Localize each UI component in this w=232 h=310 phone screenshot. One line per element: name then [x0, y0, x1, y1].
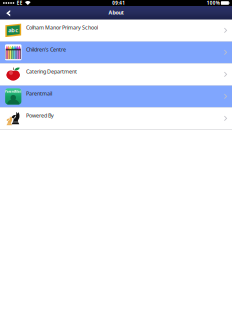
button[interactable]: ParentMail: [0, 86, 232, 108]
staticText: abc: [8, 26, 18, 34]
button[interactable]: abc: [0, 20, 232, 42]
staticText: Colham Manor Primary School: [26, 24, 98, 31]
button[interactable]: Back: [0, 6, 15, 19]
button[interactable]: Children's Centre: [0, 42, 232, 64]
staticText: Catering Department: [26, 68, 77, 75]
button[interactable]: Catering Department: [0, 64, 232, 86]
staticText: EE: [17, 0, 23, 6]
staticText: Powered By: [26, 112, 54, 119]
staticText: 09:41: [112, 0, 125, 6]
staticText: Children's Centre: [26, 46, 66, 53]
staticText: 100%: [207, 0, 220, 6]
button[interactable]: Powered By: [0, 108, 232, 130]
staticText: About: [108, 9, 123, 16]
staticText: ParentMail: [5, 89, 22, 94]
staticText: Parentmail: [26, 90, 52, 97]
